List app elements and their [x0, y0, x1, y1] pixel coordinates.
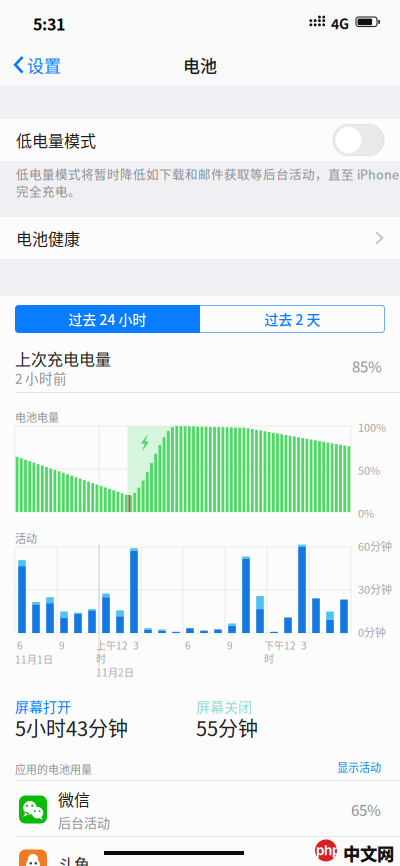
staticText: 9 — [59, 638, 65, 652]
staticText: 5小时43分钟 — [15, 713, 128, 742]
staticText: 斗鱼 — [58, 852, 90, 866]
button[interactable]: 低电量模式 — [0, 119, 400, 161]
staticText: 0% — [358, 505, 374, 521]
button[interactable]: 设置 — [3, 44, 71, 86]
staticText: 5:31 — [33, 12, 65, 35]
staticText: 65% — [351, 799, 381, 820]
staticText: 应用的电池用量 — [15, 761, 92, 777]
staticText: 设置 — [27, 53, 61, 77]
staticText: 上午12 — [96, 638, 128, 652]
staticText: 6 — [185, 638, 191, 652]
staticText: 完全充电。 — [16, 182, 81, 200]
staticText: 活动 — [15, 530, 37, 546]
button[interactable]: 斗鱼 — [0, 841, 400, 866]
staticText: 3 — [301, 638, 307, 652]
button[interactable]: 电池健康 — [0, 217, 400, 259]
staticText: 下午12 — [264, 638, 296, 652]
staticText: 30分钟 — [358, 581, 392, 597]
staticText: 0分钟 — [358, 624, 386, 640]
staticText: 过去 24 小时 — [68, 309, 146, 329]
staticText: 屏幕关闭 — [196, 696, 252, 716]
staticText: 11月1日 — [15, 652, 53, 666]
staticText: 微信 — [58, 787, 90, 811]
staticText: 电池健康 — [16, 226, 80, 250]
staticText: 后台活动 — [58, 813, 110, 831]
staticText: 过去 2 天 — [264, 309, 320, 329]
staticText: 上次充电电量 — [15, 347, 111, 370]
staticText: 60分钟 — [358, 538, 392, 554]
staticText: 100% — [358, 419, 386, 435]
staticText: 电池 — [183, 53, 217, 77]
button[interactable]: 过去 24 小时 — [15, 305, 200, 333]
staticText: 时 — [264, 651, 274, 665]
staticText: 时 — [96, 651, 106, 665]
staticText: 中文网 — [343, 840, 394, 866]
staticText: 低电量模式将暂时降低如下载和邮件获取等后台活动，直至 iPhone — [16, 165, 399, 183]
button[interactable]: 显示活动 — [332, 757, 386, 777]
button[interactable]: 微信 — [0, 787, 400, 832]
staticText: 50% — [358, 462, 380, 478]
staticText: 2 小时前 — [15, 368, 67, 387]
staticText: 3 — [133, 638, 139, 652]
staticText: 屏幕打开 — [15, 696, 71, 716]
staticText: 6 — [17, 638, 23, 652]
staticText: 4G — [331, 13, 349, 33]
staticText: 85% — [352, 355, 382, 377]
staticText: 9 — [227, 638, 233, 652]
staticText: 电池电量 — [15, 409, 59, 425]
staticText: 55分钟 — [196, 713, 258, 742]
button[interactable]: 过去 2 天 — [200, 305, 385, 333]
staticText: 11月2日 — [96, 665, 134, 679]
staticText: 低电量模式 — [16, 128, 96, 152]
staticText: php — [316, 842, 340, 859]
staticText: 显示活动 — [337, 759, 381, 775]
